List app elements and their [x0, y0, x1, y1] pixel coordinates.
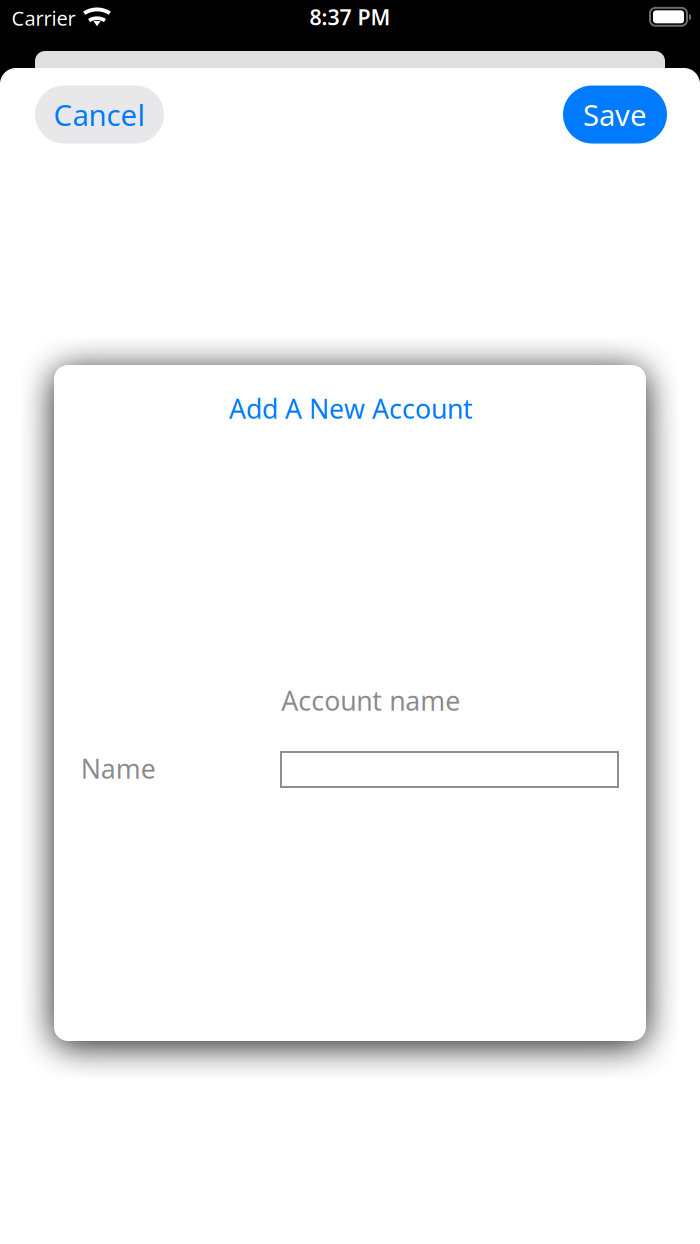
staticText: Add A New Account [229, 391, 473, 426]
staticText: 8:37 PM [309, 3, 390, 31]
staticText: Account name [281, 683, 460, 718]
staticText: Carrier [11, 5, 75, 31]
button[interactable]: Save [563, 85, 667, 143]
textField[interactable]: Account name [281, 752, 618, 787]
staticText: Cancel [53, 95, 145, 134]
staticText: Save [583, 95, 647, 134]
staticText: Name [81, 751, 156, 786]
button[interactable]: Cancel [35, 85, 164, 143]
